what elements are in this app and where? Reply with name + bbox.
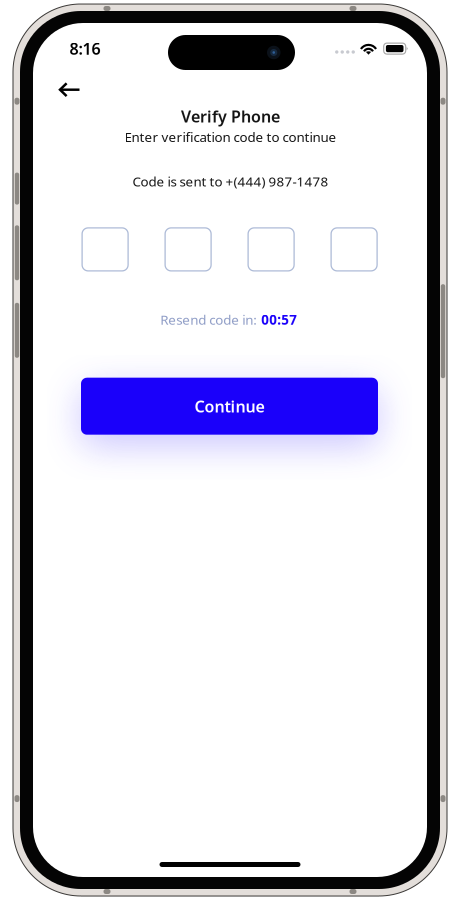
button[interactable]: Digit 2 — [165, 228, 211, 271]
staticText: Enter verification code to continue — [124, 128, 336, 146]
staticText: 8:16 — [69, 38, 100, 59]
button[interactable]: Back — [46, 71, 92, 109]
staticText: Code is sent to +(444) 987-1478 — [132, 172, 328, 190]
staticText: Verify Phone — [181, 106, 280, 127]
button[interactable]: Continue — [81, 378, 378, 435]
staticText: 00:57 — [261, 311, 297, 328]
staticText: Resend code in: — [160, 311, 257, 328]
button[interactable]: Digit 1 — [82, 228, 128, 271]
button[interactable]: Digit 3 — [248, 228, 294, 271]
button[interactable]: Digit 4 — [331, 228, 377, 271]
staticText: Continue — [194, 396, 264, 417]
